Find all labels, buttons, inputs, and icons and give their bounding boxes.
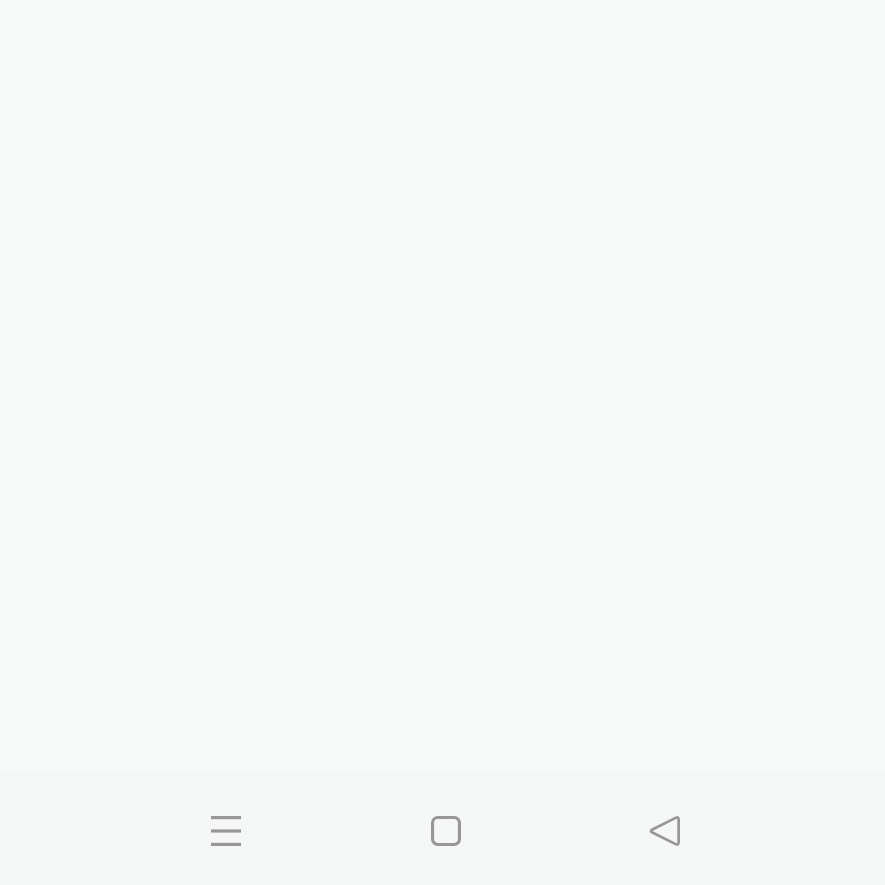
button[interactable]: Home — [408, 793, 484, 869]
button[interactable]: Recent apps — [188, 793, 264, 869]
button[interactable]: Back — [626, 793, 702, 869]
